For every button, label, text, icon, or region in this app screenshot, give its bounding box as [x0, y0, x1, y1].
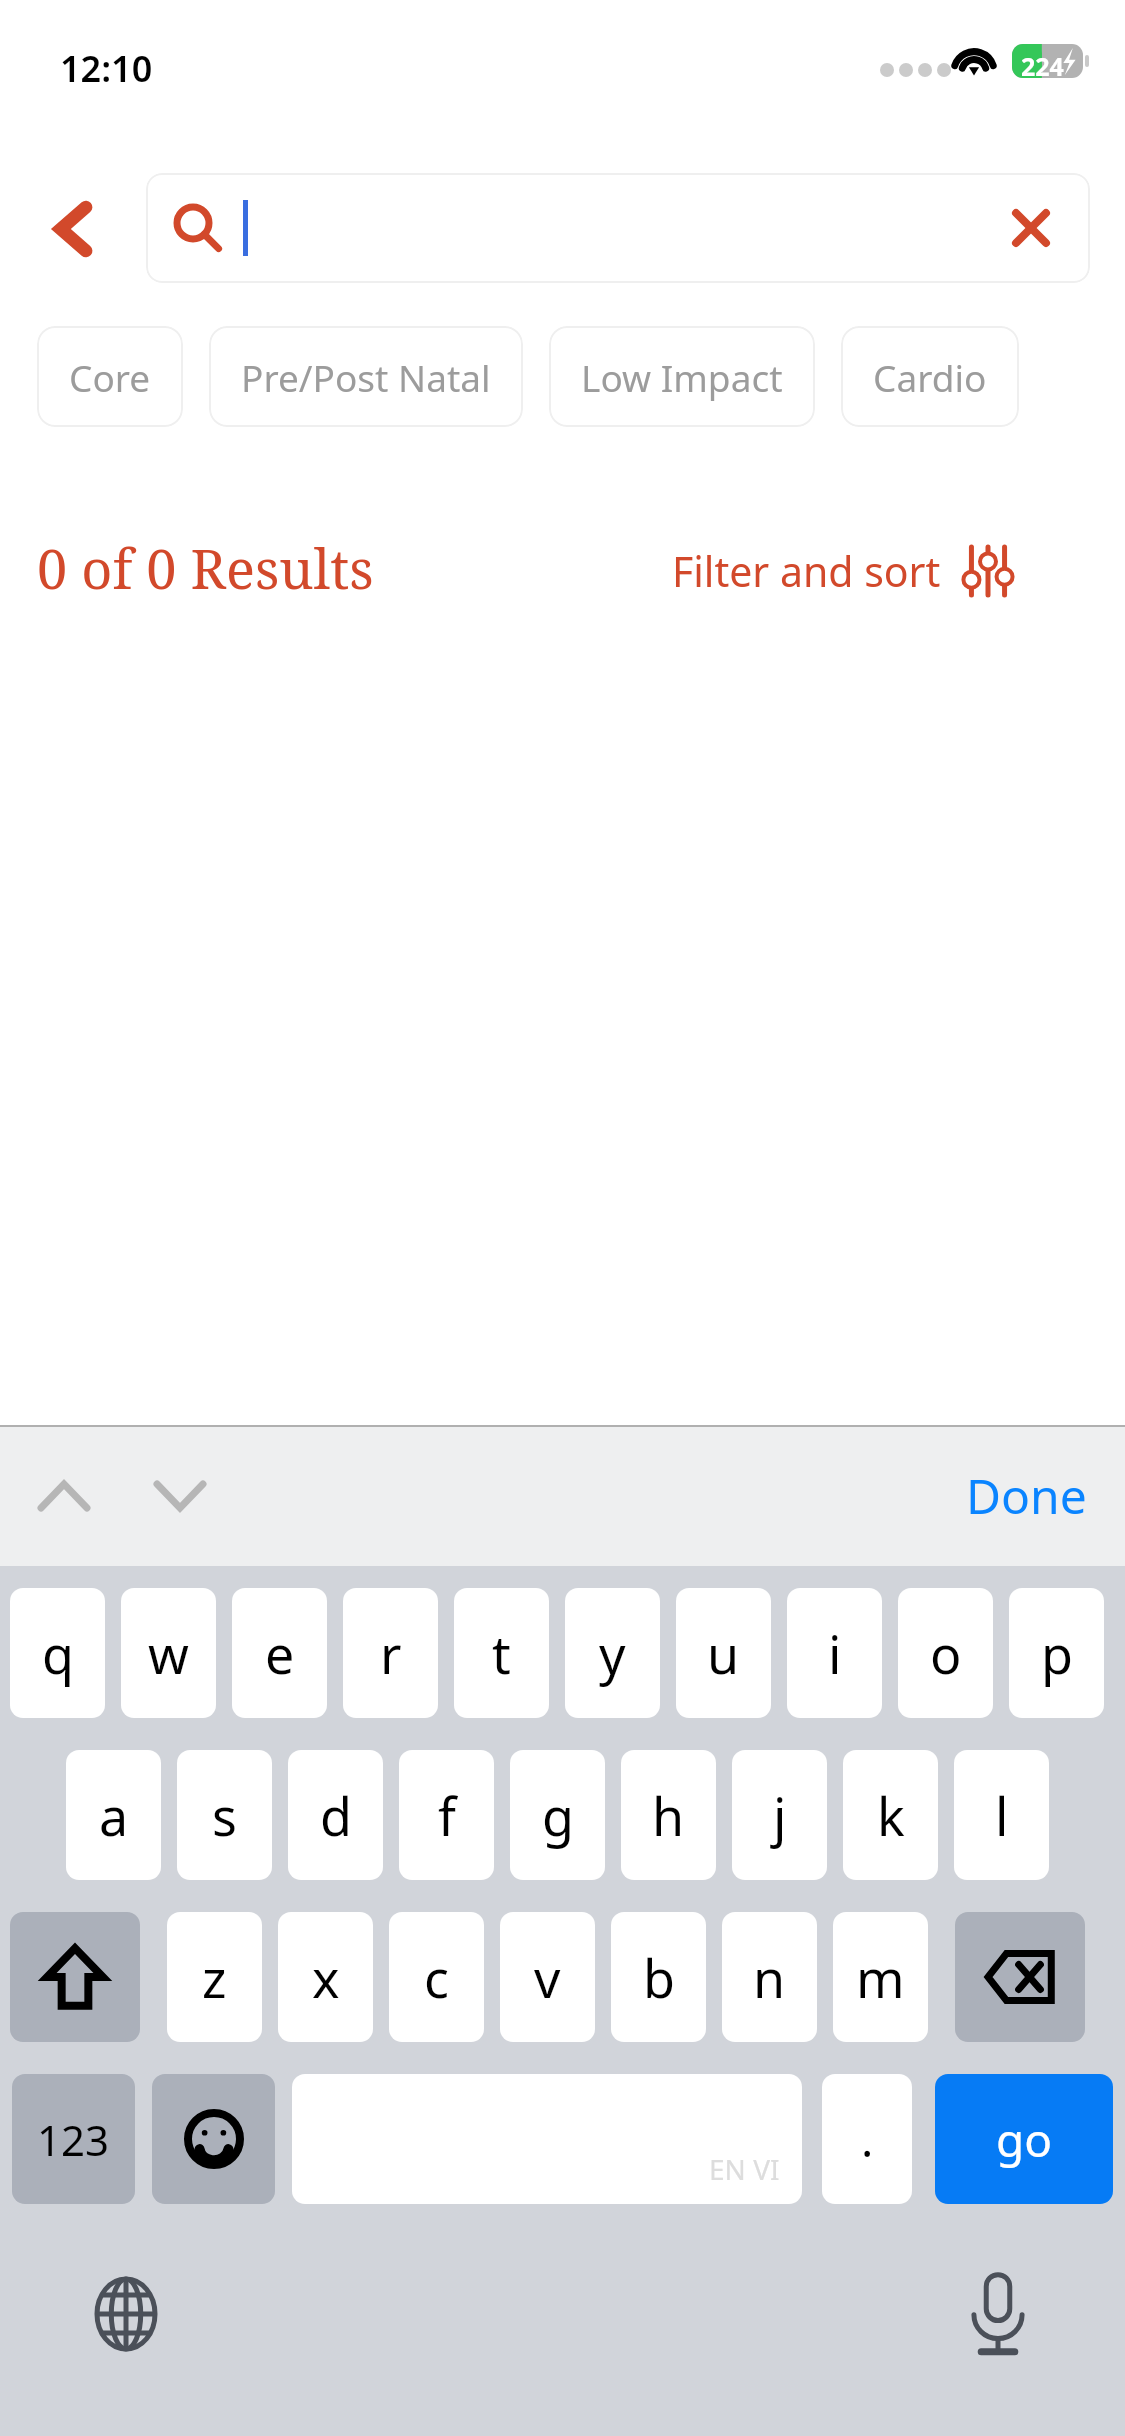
staticText: e	[265, 1618, 295, 1689]
button[interactable]: k	[843, 1750, 938, 1880]
button[interactable]: Clear search	[146, 173, 1090, 283]
button[interactable]: z	[167, 1912, 262, 2042]
staticText: b	[643, 1942, 675, 2013]
button[interactable]: 0 of 0 Results	[37, 531, 374, 605]
button[interactable]: Emoji	[152, 2074, 275, 2204]
staticText: .	[861, 2108, 874, 2171]
button[interactable]: Next field	[132, 1448, 228, 1544]
button[interactable]: Done	[952, 1445, 1101, 1546]
button[interactable]: c	[389, 1912, 484, 2042]
staticText: Filter and sort	[672, 543, 941, 599]
staticText: y	[599, 1618, 626, 1689]
button[interactable]: go	[935, 2074, 1113, 2204]
staticText: i	[828, 1618, 842, 1689]
staticText: p	[1041, 1618, 1073, 1689]
button[interactable]: Voice input	[950, 2266, 1046, 2362]
staticText: d	[320, 1780, 352, 1851]
staticText: z	[202, 1942, 227, 2013]
staticText: w	[148, 1618, 189, 1689]
button[interactable]: d	[288, 1750, 383, 1880]
button[interactable]: w	[121, 1588, 216, 1718]
staticText: Low Impact	[581, 352, 783, 402]
button[interactable]: e	[232, 1588, 327, 1718]
staticText: h	[652, 1780, 685, 1851]
staticText: n	[753, 1942, 786, 2013]
button[interactable]: t	[454, 1588, 549, 1718]
button[interactable]: u	[676, 1588, 771, 1718]
button[interactable]: o	[898, 1588, 993, 1718]
staticText: Done	[966, 1463, 1087, 1528]
staticText: x	[312, 1942, 340, 2013]
staticText: t	[492, 1618, 511, 1689]
button[interactable]: a	[66, 1750, 161, 1880]
staticText: v	[534, 1942, 561, 2013]
button[interactable]: l	[954, 1750, 1049, 1880]
staticText: q	[42, 1618, 74, 1689]
button[interactable]: j	[732, 1750, 827, 1880]
staticText: u	[707, 1618, 740, 1689]
button[interactable]: f	[399, 1750, 494, 1880]
button[interactable]: Clear search	[1002, 199, 1060, 257]
staticText: 123	[37, 2111, 110, 2168]
staticText: 224	[1021, 49, 1064, 83]
button[interactable]: v	[500, 1912, 595, 2042]
button[interactable]: Low Impact	[549, 326, 815, 427]
button[interactable]: Backspace	[955, 1912, 1085, 2042]
button[interactable]: y	[565, 1588, 660, 1718]
staticText: f	[438, 1780, 456, 1851]
staticText: Core	[69, 352, 151, 402]
staticText: go	[996, 2108, 1053, 2171]
staticText: k	[877, 1780, 905, 1851]
button[interactable]: s	[177, 1750, 272, 1880]
button[interactable]: Back	[8, 170, 138, 288]
staticText: c	[424, 1942, 449, 2013]
button[interactable]: Shift	[10, 1912, 140, 2042]
button[interactable]: p	[1009, 1588, 1104, 1718]
button[interactable]: g	[510, 1750, 605, 1880]
staticText: r	[380, 1618, 402, 1689]
staticText: m	[856, 1942, 905, 2013]
button[interactable]: n	[722, 1912, 817, 2042]
staticText: o	[930, 1618, 962, 1689]
button[interactable]: Core	[37, 326, 183, 427]
button[interactable]: 123	[12, 2074, 135, 2204]
staticText: l	[995, 1780, 1009, 1851]
staticText: EN VI	[709, 2150, 780, 2188]
button[interactable]: q	[10, 1588, 105, 1718]
staticText: a	[99, 1780, 129, 1851]
staticText: Cardio	[873, 352, 987, 402]
button[interactable]: x	[278, 1912, 373, 2042]
staticText: Pre/Post Natal	[241, 352, 491, 402]
staticText: s	[212, 1780, 237, 1851]
button[interactable]: Filter and sort	[672, 543, 1011, 599]
button[interactable]: Space	[292, 2074, 802, 2204]
button[interactable]: Pre/Post Natal	[209, 326, 523, 427]
button[interactable]: .	[822, 2074, 912, 2204]
staticText: 12:10	[60, 44, 153, 93]
button[interactable]: Previous field	[16, 1448, 112, 1544]
button[interactable]: i	[787, 1588, 882, 1718]
button[interactable]: Change keyboard language	[78, 2266, 174, 2362]
button[interactable]: h	[621, 1750, 716, 1880]
button[interactable]: m	[833, 1912, 928, 2042]
staticText: j	[773, 1780, 787, 1851]
button[interactable]: r	[343, 1588, 438, 1718]
button[interactable]: Cardio	[841, 326, 1019, 427]
staticText: g	[542, 1780, 574, 1851]
button[interactable]: b	[611, 1912, 706, 2042]
